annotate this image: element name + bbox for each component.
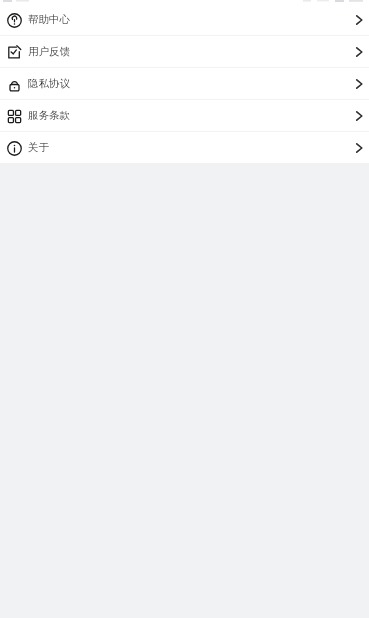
button[interactable]: 用户反馈 bbox=[0, 36, 369, 67]
other: 用户反馈 bbox=[352, 45, 366, 59]
staticText: 关于 bbox=[28, 141, 49, 154]
other: 关于 bbox=[352, 141, 366, 155]
button[interactable]: 帮助中心 bbox=[0, 4, 369, 35]
button[interactable]: 服务条款 bbox=[0, 100, 369, 131]
other: 服务条款 bbox=[352, 109, 366, 123]
button[interactable]: 隐私协议 bbox=[0, 68, 369, 99]
button[interactable]: 关于 bbox=[0, 132, 369, 163]
staticText: 服务条款 bbox=[28, 109, 70, 122]
staticText: 隐私协议 bbox=[28, 77, 70, 90]
other: 隐私协议 bbox=[352, 77, 366, 91]
other: 帮助中心 bbox=[352, 13, 366, 27]
staticText: 帮助中心 bbox=[28, 13, 70, 26]
staticText: 用户反馈 bbox=[28, 45, 70, 58]
